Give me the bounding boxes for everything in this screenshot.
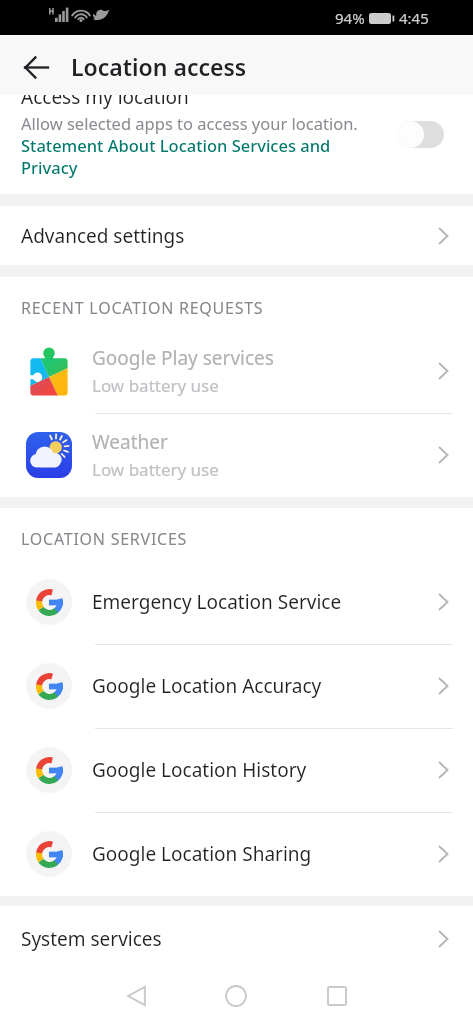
button[interactable]: Back	[12, 43, 60, 91]
button[interactable]: Access my location	[0, 95, 473, 183]
staticText: Weather	[92, 429, 168, 455]
button[interactable]: System services	[0, 906, 473, 972]
staticText: System services	[21, 926, 162, 952]
staticText: Privacy	[21, 156, 78, 178]
staticText: 94%	[335, 8, 365, 28]
staticText: Emergency Location Service	[92, 589, 438, 615]
staticText: Low battery use	[92, 458, 219, 481]
staticText: Allow selected apps to access your locat…	[21, 112, 358, 134]
staticText: RECENT LOCATION REQUESTS	[21, 297, 264, 319]
button[interactable]: Access my location toggle	[397, 121, 444, 148]
staticText: Google Location Accuracy	[92, 673, 438, 699]
button[interactable]: Emergency Location Service	[0, 560, 473, 644]
button[interactable]: Advanced settings	[0, 206, 473, 265]
staticText: Google Play services	[92, 345, 274, 371]
staticText: Location access	[71, 51, 247, 82]
staticText: Access my location	[21, 95, 189, 110]
button[interactable]: Google Location Sharing	[0, 812, 473, 896]
staticText: Google Location History	[92, 757, 438, 783]
button[interactable]: Recent apps	[312, 971, 362, 1021]
staticText: LOCATION SERVICES	[21, 528, 188, 550]
staticText: 4:45	[399, 8, 429, 28]
staticText: Low battery use	[92, 374, 219, 397]
button[interactable]: Google Play services	[0, 329, 473, 413]
button[interactable]: Back	[111, 971, 161, 1021]
button[interactable]: Google Location History	[0, 728, 473, 812]
staticText: Statement About Location Services and	[21, 134, 331, 156]
staticText: Google Location Sharing	[92, 841, 438, 867]
button[interactable]: Home	[211, 971, 261, 1021]
button[interactable]: Weather	[0, 413, 473, 497]
button[interactable]: Google Location Accuracy	[0, 644, 473, 728]
staticText: Advanced settings	[21, 223, 185, 249]
